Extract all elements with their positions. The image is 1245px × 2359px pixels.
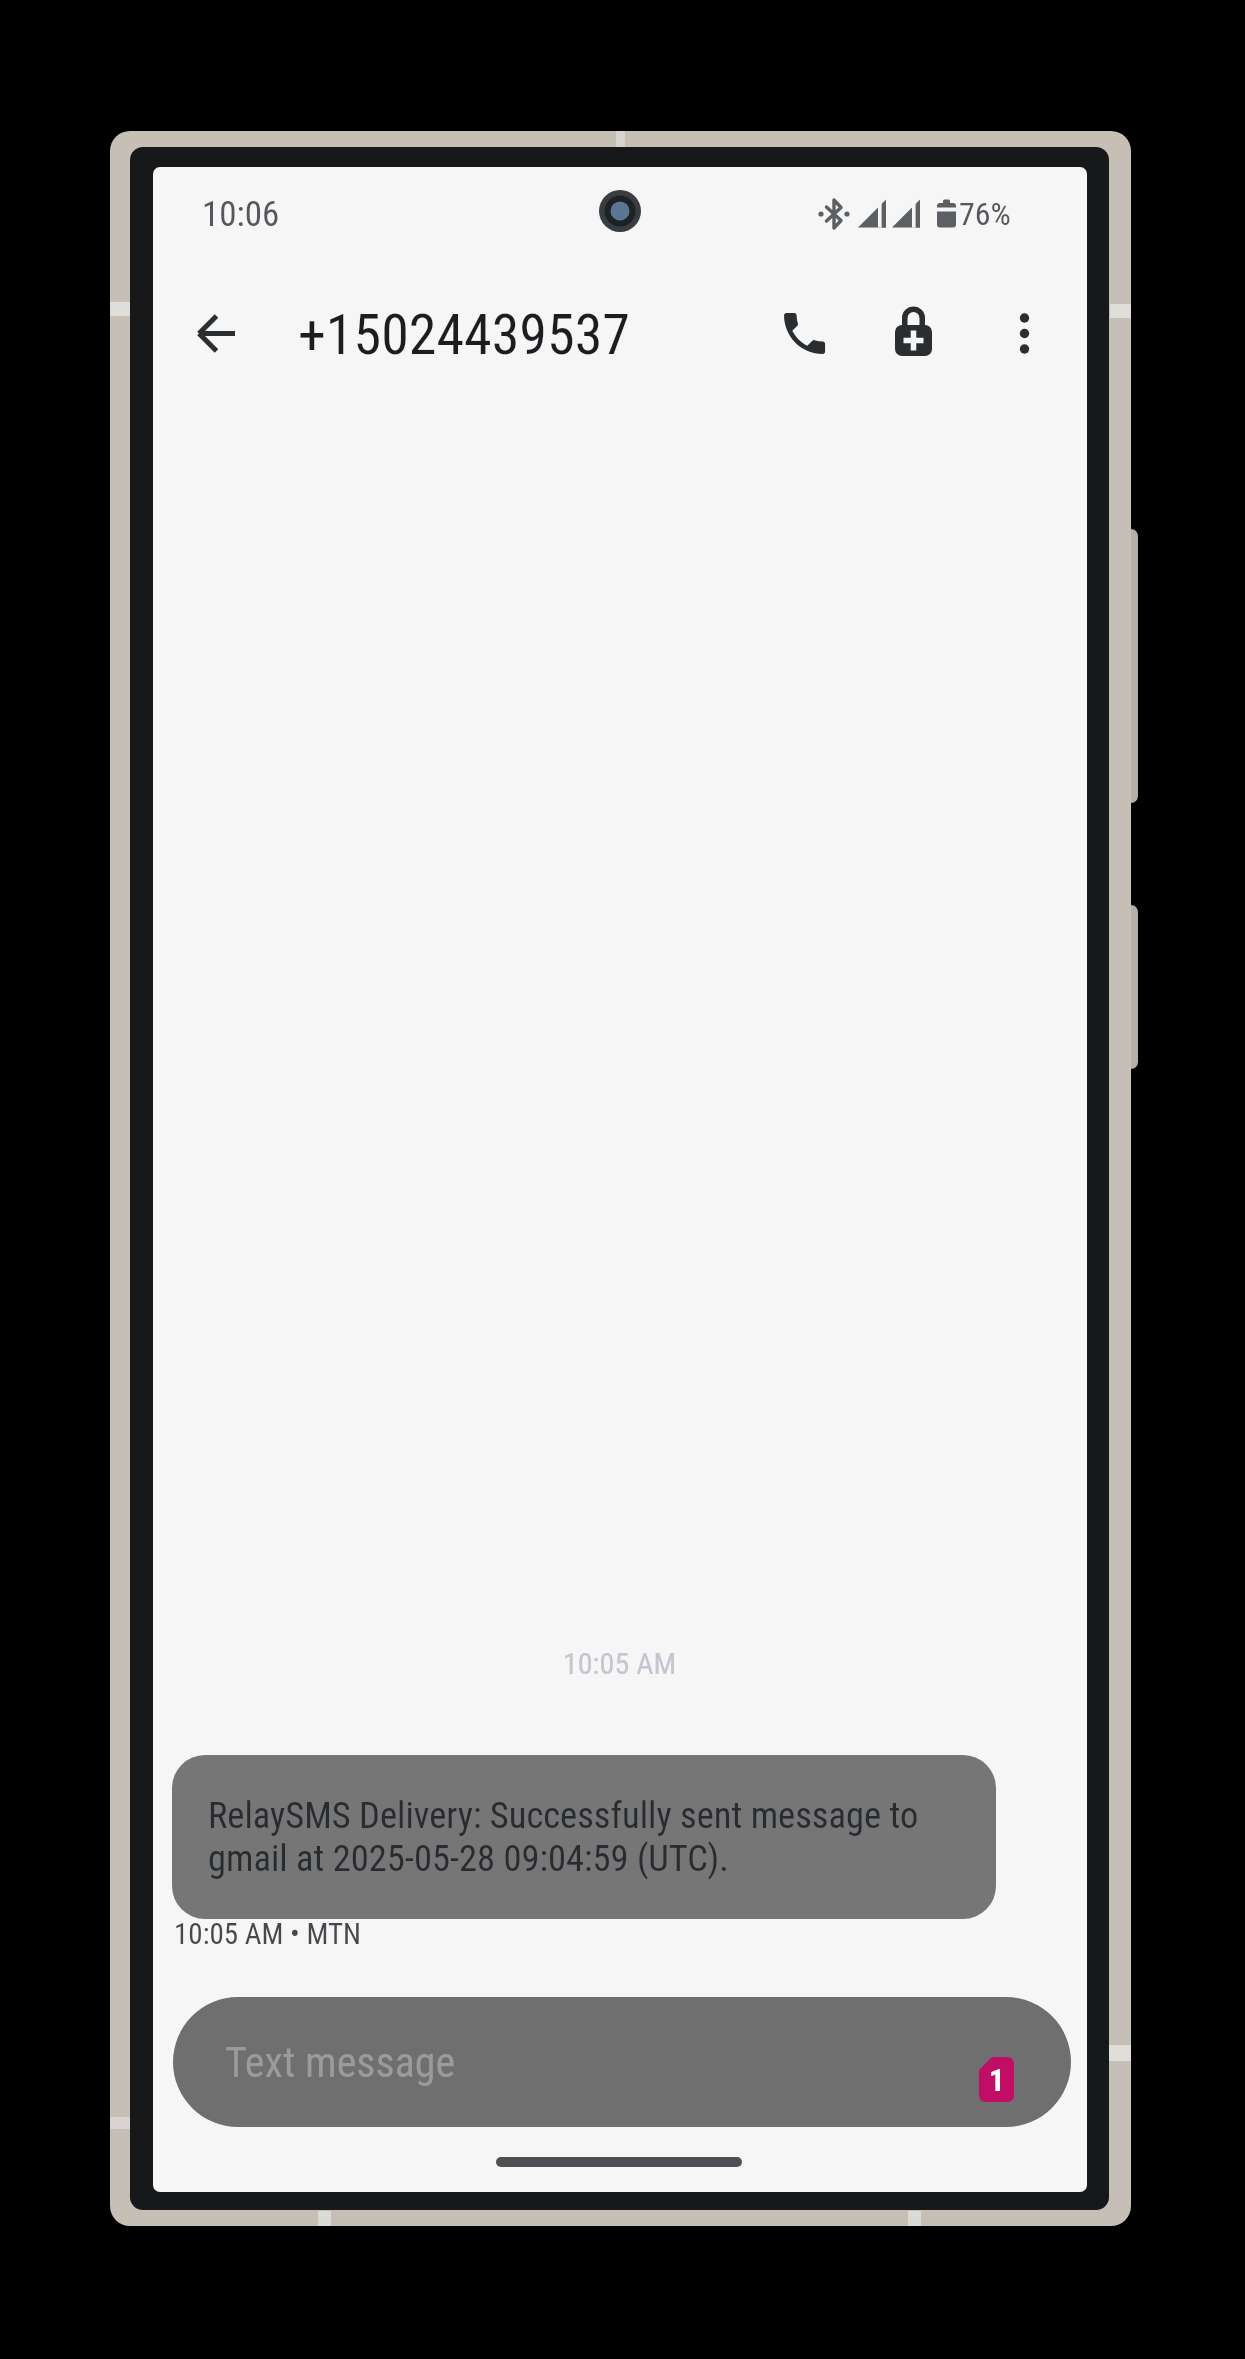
button[interactable] [775, 304, 835, 364]
staticText: +15024439537 [298, 302, 630, 365]
staticText: Text message [225, 2038, 456, 2087]
staticText: 10:05 AM • MTN [174, 1917, 361, 1951]
staticText: gmail at 2025-05-28 09:04:59 (UTC). [208, 1837, 729, 1880]
button[interactable] [187, 304, 247, 364]
button[interactable] [995, 304, 1055, 364]
staticText: 10:05 AM [563, 1646, 677, 1681]
staticText: RelaySMS Delivery: Successfully sent mes… [208, 1794, 919, 1837]
staticText: 10:06 [202, 194, 280, 235]
button[interactable]: RelaySMS Delivery: Successfully sent mes… [172, 1755, 996, 1919]
button[interactable] [884, 304, 944, 364]
staticText: 1 [989, 2062, 1005, 2098]
staticText: 76% [959, 195, 1011, 233]
button[interactable]: +15024439537 [298, 302, 718, 365]
button[interactable]: Text message [173, 1997, 1071, 2127]
